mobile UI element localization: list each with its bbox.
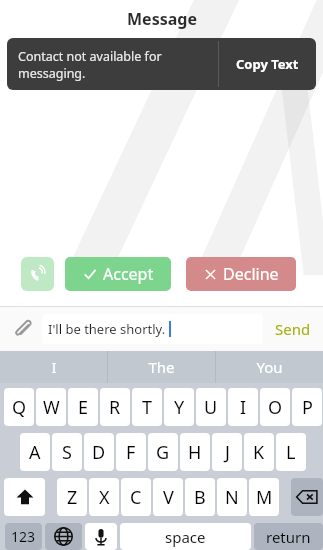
- staticText: Z: [67, 485, 78, 510]
- staticText: Accept: [103, 263, 154, 285]
- button[interactable]: U: [196, 388, 226, 426]
- button[interactable]: T: [132, 388, 162, 426]
- staticText: H: [188, 440, 202, 465]
- staticText: I: [240, 395, 247, 420]
- button[interactable]: J: [212, 433, 242, 471]
- staticText: P: [302, 395, 313, 420]
- staticText: M: [256, 485, 273, 510]
- staticText: G: [156, 440, 170, 465]
- button[interactable]: Attach: [8, 314, 38, 344]
- staticText: The: [148, 357, 175, 377]
- button[interactable]: C: [121, 478, 151, 516]
- button[interactable]: R: [100, 388, 130, 426]
- button[interactable]: V: [153, 478, 183, 516]
- staticText: X: [99, 485, 110, 510]
- button[interactable]: F: [116, 433, 146, 471]
- staticText: J: [225, 440, 230, 465]
- staticText: Contact not available for messaging.: [18, 48, 218, 81]
- button[interactable]: return: [254, 523, 323, 550]
- button[interactable]: space: [120, 523, 251, 550]
- button[interactable]: S: [52, 433, 82, 471]
- button[interactable]: I'll be there shortly.: [42, 314, 263, 344]
- staticText: Message: [127, 8, 197, 30]
- button[interactable]: Decline: [186, 257, 296, 291]
- button[interactable]: E: [68, 388, 98, 426]
- staticText: A: [29, 440, 41, 465]
- staticText: K: [253, 440, 265, 465]
- button[interactable]: Voice input: [85, 523, 117, 550]
- staticText: E: [78, 395, 89, 420]
- button[interactable]: 123: [5, 523, 42, 550]
- button[interactable]: Shift: [4, 478, 45, 516]
- staticText: W: [43, 395, 60, 420]
- staticText: R: [109, 395, 121, 420]
- button[interactable]: M: [249, 478, 279, 516]
- button[interactable]: W: [36, 388, 66, 426]
- staticText: I: [51, 357, 57, 377]
- button[interactable]: D: [84, 433, 114, 471]
- button[interactable]: K: [244, 433, 274, 471]
- button[interactable]: P: [292, 388, 322, 426]
- button[interactable]: Z: [57, 478, 87, 516]
- staticText: U: [204, 395, 218, 420]
- button[interactable]: You: [216, 351, 323, 383]
- staticText: I'll be there shortly.: [48, 320, 166, 338]
- button[interactable]: X: [89, 478, 119, 516]
- button[interactable]: H: [180, 433, 210, 471]
- button[interactable]: Send: [271, 319, 315, 339]
- button[interactable]: Call: [21, 257, 54, 291]
- staticText: O: [268, 395, 283, 420]
- staticText: V: [163, 485, 174, 510]
- button[interactable]: I: [228, 388, 258, 426]
- staticText: N: [225, 485, 239, 510]
- button[interactable]: Backspace: [291, 478, 323, 516]
- button[interactable]: Q: [4, 388, 34, 426]
- button[interactable]: A: [20, 433, 50, 471]
- button[interactable]: Accept: [65, 257, 171, 291]
- staticText: L: [286, 440, 296, 465]
- button[interactable]: L: [276, 433, 306, 471]
- button[interactable]: N: [217, 478, 247, 516]
- staticText: T: [142, 395, 153, 420]
- staticText: F: [126, 440, 136, 465]
- staticText: D: [92, 440, 106, 465]
- staticText: S: [62, 440, 72, 465]
- staticText: Decline: [223, 263, 279, 285]
- button[interactable]: Copy Text: [219, 38, 316, 90]
- staticText: Q: [12, 395, 27, 420]
- button[interactable]: O: [260, 388, 290, 426]
- staticText: Copy Text: [236, 55, 299, 73]
- staticText: B: [194, 485, 206, 510]
- staticText: Y: [174, 395, 185, 420]
- button[interactable]: B: [185, 478, 215, 516]
- button[interactable]: Contact not available for messaging.: [7, 38, 218, 90]
- button[interactable]: I: [0, 351, 107, 383]
- staticText: space: [165, 527, 206, 547]
- staticText: return: [266, 527, 311, 547]
- button[interactable]: Change keyboard: [45, 523, 82, 550]
- staticText: C: [130, 485, 142, 510]
- staticText: Send: [275, 319, 311, 339]
- button[interactable]: Y: [164, 388, 194, 426]
- staticText: 123: [11, 527, 36, 546]
- staticText: You: [256, 357, 283, 377]
- button[interactable]: G: [148, 433, 178, 471]
- button[interactable]: The: [108, 351, 215, 383]
